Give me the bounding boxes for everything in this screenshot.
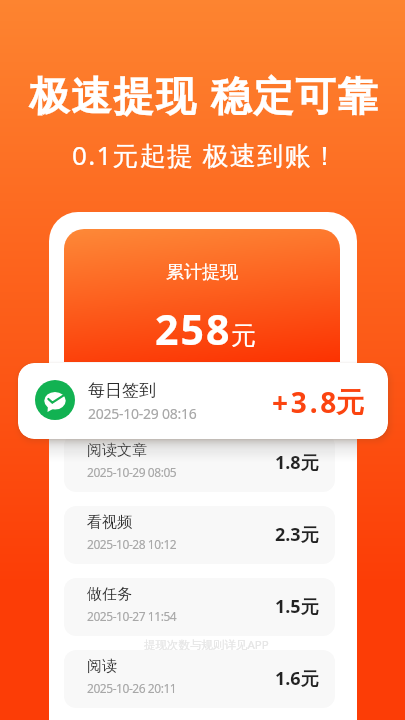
staticText: 阅读 [87,657,117,676]
staticText: 2.3元 [275,522,319,547]
staticText: 极速提现 稳定可靠 [2,67,405,122]
staticText: 元 [336,385,364,420]
button[interactable]: 做任务 [64,578,335,636]
staticText: 2025-10-28 10:12 [87,536,177,552]
staticText: 做任务 [87,585,132,604]
staticText: 2025-10-29 08:16 [88,404,197,423]
staticText: 1.5元 [275,594,319,619]
button[interactable]: 阅读 [64,650,335,708]
staticText: 每日签到 [88,380,156,401]
staticText: 2025-10-26 20:11 [87,680,177,696]
staticText: 258 [155,301,232,357]
staticText: +3.8 [272,383,340,421]
other: WeChat daily check-in [35,380,75,420]
staticText: 元 [231,320,256,351]
staticText: 看视频 [87,513,132,532]
button[interactable]: WeChat daily check-in [18,363,388,439]
staticText: 1.8元 [275,450,319,475]
staticText: 0.1元起提 极速到账！ [3,137,405,173]
button[interactable]: 阅读文章 [64,434,335,492]
staticText: 阅读文章 [87,441,147,460]
staticText: 累计提现 [64,261,340,284]
staticText: 提现次数与规则详见APP [144,637,269,653]
staticText: 2025-10-27 11:54 [87,608,177,624]
staticText: 1.6元 [275,666,319,691]
button[interactable]: 看视频 [64,506,335,564]
staticText: 2025-10-29 08:05 [87,464,177,480]
